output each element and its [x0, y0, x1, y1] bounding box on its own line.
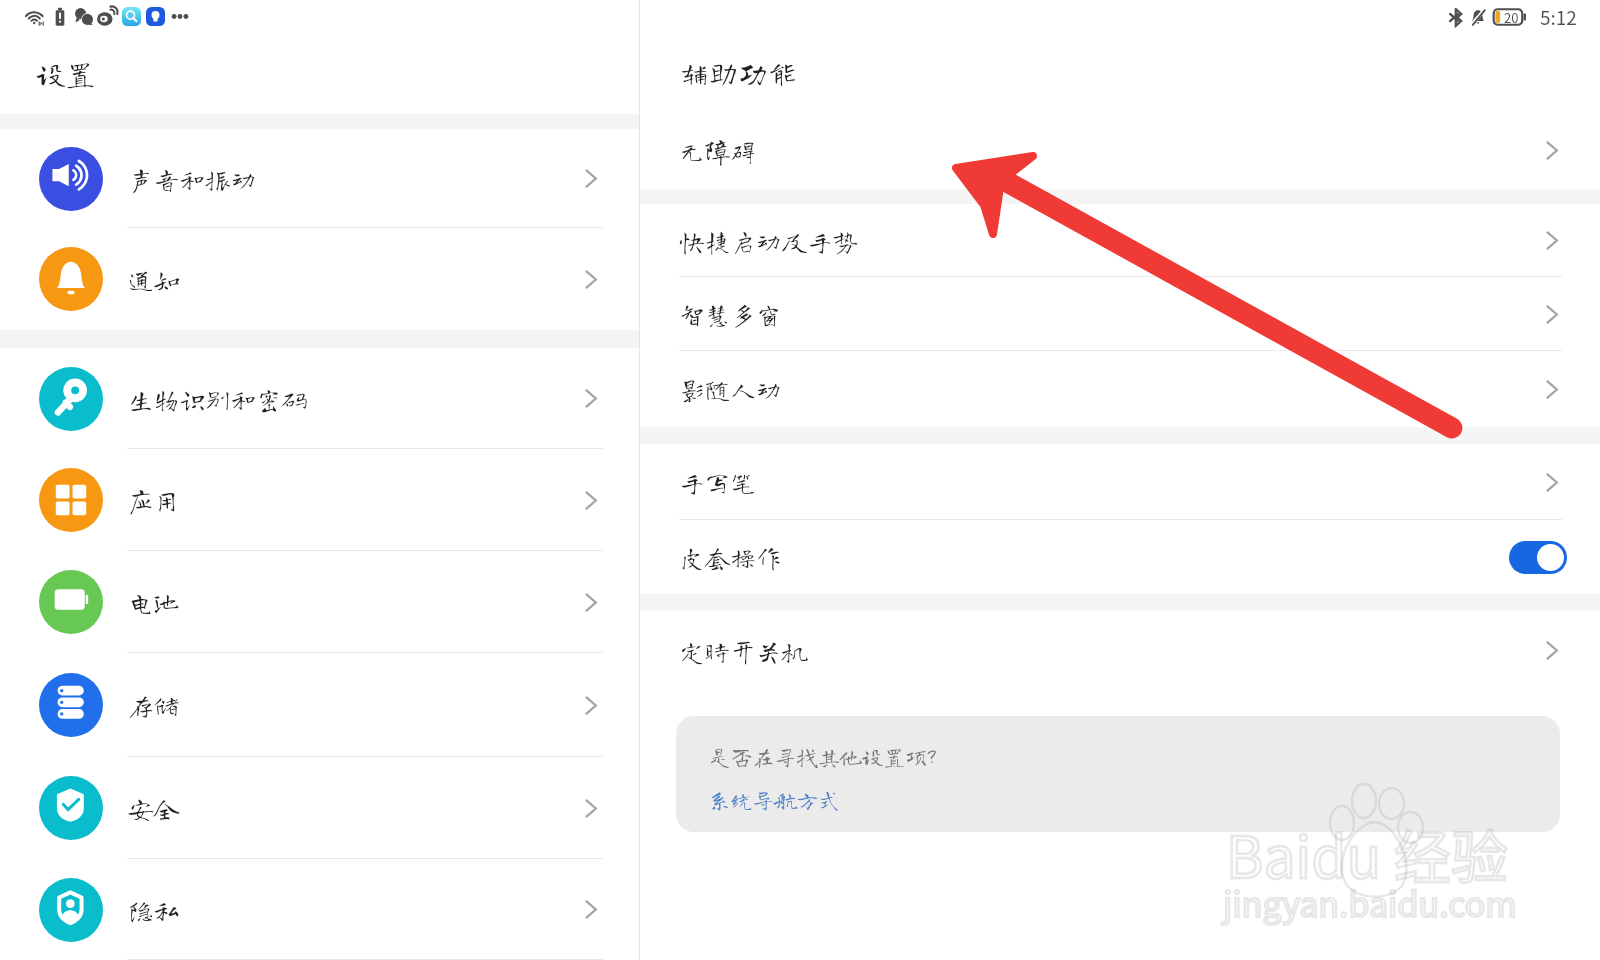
staticText: 生物识别和密码: [128, 386, 308, 412]
staticText: 定时开关机: [679, 638, 808, 664]
staticText: 影随人动: [679, 376, 782, 402]
button[interactable]: 智慧多窗: [640, 277, 1600, 351]
staticText: Baidu 经验: [1226, 812, 1508, 895]
staticText: 5:12: [1540, 3, 1577, 31]
button[interactable]: 通知: [0, 228, 639, 330]
button[interactable]: 系统导航方式: [709, 789, 840, 811]
button[interactable]: Toggle case control: [1509, 541, 1567, 574]
staticText: 智慧多窗: [679, 301, 782, 327]
button[interactable]: 定时开关机: [640, 611, 1600, 690]
button[interactable]: 安全: [0, 757, 639, 859]
button[interactable]: 是否在寻找其他设置项?: [676, 716, 1560, 832]
staticText: 电池: [128, 589, 180, 615]
staticText: 手写笔: [679, 469, 756, 495]
staticText: 应用: [128, 487, 180, 513]
button[interactable]: 快捷启动及手势: [640, 204, 1600, 277]
staticText: 隐私: [128, 897, 180, 923]
staticText: 设置: [36, 59, 96, 89]
button[interactable]: 应用: [0, 449, 639, 551]
button[interactable]: 声音和振动: [0, 129, 639, 228]
button[interactable]: 皮套操作: [640, 520, 1600, 594]
button[interactable]: 无障碍: [640, 112, 1600, 189]
staticText: 声音和振动: [128, 166, 257, 192]
button[interactable]: 电池: [0, 551, 639, 653]
staticText: 存储: [128, 692, 180, 718]
button[interactable]: 手写笔: [640, 444, 1600, 520]
staticText: 快捷启动及手势: [679, 228, 859, 254]
staticText: 通知: [128, 266, 180, 292]
staticText: 无障碍: [679, 138, 756, 164]
staticText: 辅助功能: [679, 58, 798, 88]
button[interactable]: 生物识别和密码: [0, 348, 639, 449]
staticText: 是否在寻找其他设置项?: [709, 746, 935, 768]
button[interactable]: 隐私: [0, 859, 639, 960]
button[interactable]: 存储: [0, 653, 639, 757]
staticText: 安全: [128, 795, 180, 821]
button[interactable]: 影随人动: [640, 351, 1600, 427]
staticText: 20: [1504, 8, 1519, 26]
staticText: jingyan.baidu.com: [1223, 878, 1517, 927]
staticText: 皮套操作: [679, 544, 782, 570]
